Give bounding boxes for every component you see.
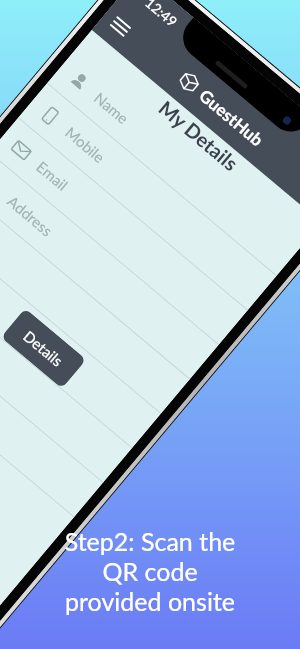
staticText: My Details: [154, 95, 243, 175]
staticText: Mobile: [62, 123, 109, 166]
staticText: 12:49: [142, 0, 181, 31]
button[interactable]: Email: [0, 118, 247, 345]
staticText: Details: [20, 327, 67, 370]
button[interactable]: [0, 256, 132, 483]
button[interactable]: Name: [47, 49, 300, 276]
button[interactable]: Menu: [98, 4, 143, 49]
button[interactable]: Details: [1, 308, 86, 389]
button[interactable]: [0, 187, 190, 414]
button[interactable]: [0, 290, 103, 517]
staticText: Email: [33, 157, 72, 194]
staticText: GuestHub: [196, 85, 268, 150]
staticText: Name: [91, 88, 132, 127]
button[interactable]: Mobile: [18, 83, 276, 311]
staticText: Address: [4, 192, 56, 240]
staticText: Step2: Scan the QR code provided onsite: [0, 526, 300, 616]
button[interactable]: [0, 221, 161, 449]
button[interactable]: Address: [0, 152, 219, 380]
